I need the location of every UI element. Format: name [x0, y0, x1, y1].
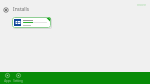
staticText: more — [137, 2, 146, 7]
button[interactable]: Apps — [2, 73, 12, 84]
staticText: Installs — [13, 6, 30, 13]
button[interactable]: Menu — [3, 7, 9, 13]
button[interactable] — [12, 17, 51, 28]
button[interactable]: more — [137, 2, 146, 7]
staticText: Settings — [13, 79, 23, 84]
button[interactable]: Settings — [13, 73, 23, 84]
staticText: Apps — [4, 79, 11, 83]
